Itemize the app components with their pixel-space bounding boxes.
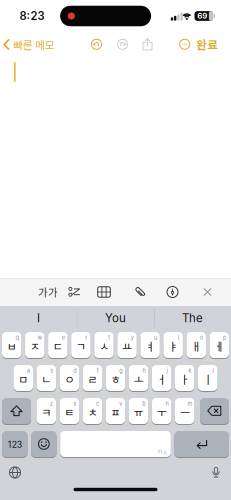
staticText: s [50, 367, 53, 374]
staticText: ㅜ [157, 404, 167, 420]
button[interactable]: I [3, 307, 73, 329]
staticText: ㅡ [180, 404, 190, 420]
button[interactable]: ㄹ [83, 365, 102, 391]
button[interactable]: ㅣ [198, 365, 217, 391]
staticText: d [73, 367, 76, 374]
staticText: ㄱ [76, 338, 86, 354]
staticText: ㄴ [41, 371, 51, 387]
button[interactable]: ㅗ [129, 365, 148, 391]
staticText: p [223, 334, 226, 341]
button[interactable]: ㅛ [117, 332, 137, 358]
staticText: u [154, 334, 157, 341]
staticText: t [108, 334, 110, 341]
button[interactable]: ㅂ [2, 332, 21, 358]
staticText: c [96, 400, 99, 407]
staticText: ㅂ [7, 338, 17, 354]
button[interactable]: You [80, 307, 150, 329]
staticText: ㅛ [122, 338, 132, 354]
staticText: 한A [157, 448, 167, 456]
staticText: ㄹ [87, 371, 97, 387]
staticText: ㅁ [18, 371, 28, 387]
button[interactable]: Dismiss keyboard [203, 288, 211, 296]
button[interactable]: ㅓ [152, 365, 171, 391]
staticText: i [178, 334, 179, 341]
staticText: ㅗ [134, 371, 144, 387]
button[interactable]: ㅍ [106, 398, 125, 424]
button[interactable]: Shift [2, 398, 31, 424]
staticText: e [62, 334, 65, 341]
button[interactable]: Undo [91, 38, 102, 50]
staticText: 가가 [38, 284, 58, 300]
staticText: The [182, 311, 203, 325]
button[interactable]: Format [38, 284, 58, 300]
button[interactable]: ㅋ [37, 398, 56, 424]
staticText: r [85, 334, 87, 341]
staticText: f [97, 367, 99, 374]
staticText: 123 [8, 439, 22, 450]
button[interactable]: Return [174, 431, 229, 457]
staticText: ㅋ [41, 404, 51, 420]
button[interactable]: Checklist [68, 286, 80, 298]
staticText: ㅅ [99, 338, 109, 354]
staticText: ㅍ [110, 404, 120, 420]
button[interactable]: ㅁ [13, 365, 33, 391]
button[interactable]: The [157, 307, 227, 329]
button[interactable]: ㅔ [209, 332, 229, 358]
staticText: ㅔ [214, 338, 224, 354]
button[interactable]: Back [3, 37, 55, 52]
button[interactable]: ㅠ [129, 398, 148, 424]
staticText: n [165, 400, 168, 407]
staticText: You [105, 311, 126, 325]
staticText: w [38, 334, 43, 341]
button[interactable]: Delete [200, 398, 229, 424]
staticText: k [188, 367, 191, 374]
staticText: I [37, 311, 40, 325]
button[interactable]: ㄴ [37, 365, 56, 391]
button[interactable]: Next keyboard [8, 466, 21, 479]
staticText: ㅕ [145, 338, 155, 354]
staticText: ㅠ [133, 404, 143, 420]
button[interactable]: Markup [166, 286, 178, 298]
staticText: v [119, 400, 122, 407]
staticText: b [142, 400, 145, 407]
button[interactable]: ㄷ [48, 332, 68, 358]
button[interactable]: ㅏ [175, 365, 194, 391]
staticText: h [142, 367, 145, 374]
button[interactable]: ㅕ [140, 332, 160, 358]
button[interactable]: Attach [134, 285, 146, 298]
button[interactable]: Space [60, 431, 171, 457]
button[interactable]: ㅜ [152, 398, 171, 424]
staticText: 빠른 메모 [13, 37, 55, 52]
button[interactable]: More [179, 38, 190, 50]
staticText: ㅣ [203, 371, 213, 387]
button[interactable]: Emoji [31, 431, 57, 457]
button[interactable]: ㄱ [71, 332, 91, 358]
button[interactable]: ㅈ [25, 332, 45, 358]
staticText: q [16, 334, 19, 341]
button[interactable]: Redo [117, 38, 128, 50]
staticText: g [119, 367, 122, 374]
staticText: ㅎ [110, 371, 120, 387]
button[interactable]: ㅅ [94, 332, 114, 358]
button[interactable]: ㅡ [175, 398, 194, 424]
staticText: ㅊ [87, 404, 97, 420]
staticText: a [27, 367, 30, 374]
button[interactable]: Share [142, 38, 153, 51]
button[interactable]: ㅐ [186, 332, 206, 358]
button[interactable]: ㅑ [163, 332, 183, 358]
staticText: z [50, 400, 53, 407]
staticText: l [213, 367, 214, 374]
button[interactable]: Dictate [210, 466, 222, 478]
staticText: ㄷ [53, 338, 63, 354]
staticText: ㅏ [180, 371, 190, 387]
staticText: ㅈ [30, 338, 40, 354]
staticText: j [166, 367, 167, 374]
button[interactable]: 완료 [196, 36, 218, 53]
button[interactable]: Numbers [2, 431, 27, 457]
button[interactable]: ㅊ [83, 398, 102, 424]
button[interactable]: Table [98, 287, 110, 297]
button[interactable]: ㅌ [60, 398, 79, 424]
button[interactable]: ㅎ [106, 365, 125, 391]
button[interactable]: ㅇ [60, 365, 79, 391]
staticText: 8:23 [19, 9, 44, 23]
